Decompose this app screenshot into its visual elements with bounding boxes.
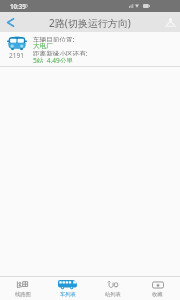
staticText: 2191 — [9, 51, 24, 60]
staticText: 10:39 — [10, 2, 26, 10]
staticText: 车辆目前位置: — [33, 35, 75, 42]
staticText: 距离新缘小区还有: — [33, 49, 88, 56]
button[interactable]: 站列表 — [90, 277, 135, 300]
staticText: 大电厂 — [33, 42, 53, 49]
staticText: 收藏 — [152, 291, 163, 298]
staticText: 2路(切换运行方向) — [49, 16, 131, 30]
staticText: 5站 4.49公里 — [33, 56, 74, 63]
button[interactable]: Back — [0, 12, 20, 32]
staticText: 车列表 — [60, 291, 76, 298]
button[interactable]: 线路图 — [0, 277, 45, 300]
button[interactable]: 2191 — [0, 32, 180, 66]
staticText: 站列表 — [105, 291, 121, 298]
button[interactable]: 收藏 — [135, 277, 180, 300]
button[interactable]: Map — [160, 12, 180, 32]
button[interactable]: 车列表 — [45, 277, 90, 300]
staticText: 线路图 — [15, 291, 31, 298]
